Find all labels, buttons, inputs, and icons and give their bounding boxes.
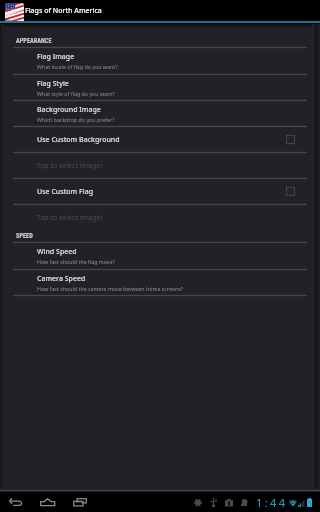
staticText: Flags of North America [25, 6, 102, 16]
button[interactable]: Use Custom Flag [0, 179, 320, 204]
staticText: SPEED [16, 232, 33, 239]
staticText: Flag Image [37, 52, 75, 62]
button[interactable]: Tap to select image! [0, 205, 320, 230]
staticText: Use Custom Flag [37, 187, 286, 197]
staticText: Background Image [37, 105, 101, 115]
staticText: Camera Speed [37, 274, 86, 284]
staticText: Use Custom Background [37, 135, 286, 145]
staticText: Tap to select image! [37, 161, 103, 171]
button[interactable]: Flag Style [0, 75, 320, 100]
staticText: APPEARANCE [16, 37, 52, 44]
button[interactable]: Back [2, 492, 30, 512]
staticText: Tap to select image! [37, 213, 103, 223]
button[interactable]: Flags of North America [0, 0, 320, 21]
button[interactable]: Use Custom Background [0, 127, 320, 152]
staticText: What locale of flag do you want? [37, 63, 118, 70]
button[interactable]: Tap to select image! [0, 153, 320, 178]
staticText: What style of flag do you want? [37, 90, 115, 97]
button[interactable]: Wind Speed [0, 243, 320, 268]
staticText: Wind Speed [37, 247, 77, 257]
staticText: Flag Style [37, 79, 69, 89]
button[interactable]: Home [34, 492, 62, 512]
button[interactable]: Recent apps [67, 492, 95, 512]
staticText: How fast should the camera move between … [37, 285, 184, 292]
button[interactable]: Camera Speed [0, 270, 320, 295]
staticText: Which backdrop do you prefer? [37, 116, 115, 123]
staticText: How fast should the flag move? [37, 258, 115, 265]
button[interactable]: Flag Image [0, 48, 320, 73]
staticText: 1:44 [256, 495, 288, 510]
button[interactable]: Background Image [0, 101, 320, 126]
